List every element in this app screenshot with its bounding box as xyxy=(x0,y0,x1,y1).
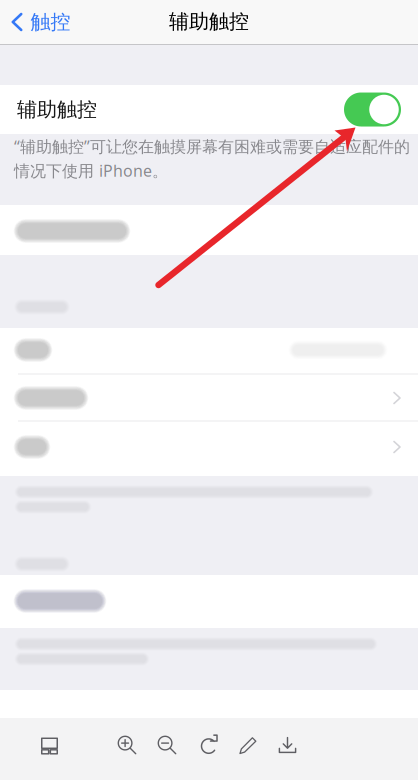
button[interactable]: 触控 xyxy=(1,0,78,44)
staticText: 辅助触控 xyxy=(169,9,249,34)
button[interactable]: Rotate xyxy=(186,718,232,772)
staticText: 辅助触控 xyxy=(17,97,97,122)
staticText: “辅助触控”可让您在触摸屏幕有困难或需要自适应配件的 xyxy=(14,136,410,157)
staticText: 触控 xyxy=(30,10,70,34)
button[interactable]: 辅助触控 xyxy=(0,85,418,134)
button[interactable]: Markup xyxy=(225,718,271,772)
button[interactable]: Zoom out xyxy=(144,718,190,772)
button[interactable]: Page view xyxy=(22,719,76,773)
button[interactable]: Zoom in xyxy=(104,718,150,772)
staticText: 情况下使用 iPhone。 xyxy=(14,160,168,181)
button[interactable]: Save xyxy=(264,718,310,772)
